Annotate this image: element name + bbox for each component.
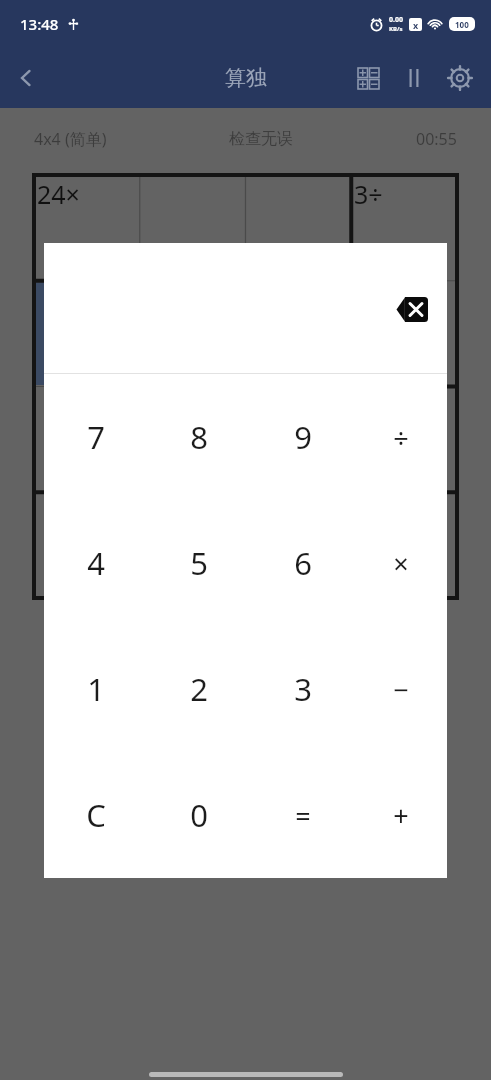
button[interactable]: +: [355, 752, 447, 878]
button[interactable]: 2: [147, 626, 251, 752]
button[interactable]: 8: [147, 374, 251, 500]
staticText: 9: [294, 416, 312, 458]
staticText: x: [413, 19, 419, 31]
staticText: 7: [87, 416, 105, 458]
staticText: +: [393, 797, 409, 834]
button[interactable]: Back: [0, 52, 52, 104]
staticText: 4x4 (简单): [34, 128, 107, 150]
staticText: 5: [190, 542, 208, 584]
staticText: 00:55: [416, 128, 457, 150]
staticText: 24×: [37, 177, 80, 211]
button[interactable]: 4: [44, 500, 147, 626]
staticText: −: [393, 671, 409, 708]
button[interactable]: 9: [251, 374, 355, 500]
button[interactable]: ×: [355, 500, 447, 626]
staticText: ×: [393, 545, 409, 582]
staticText: 6: [294, 542, 312, 584]
button[interactable]: 5: [147, 500, 251, 626]
staticText: 2: [190, 668, 208, 710]
button[interactable]: 3: [251, 626, 355, 752]
staticText: 1: [87, 668, 105, 710]
staticText: 3: [294, 668, 312, 710]
staticText: 100: [455, 19, 469, 30]
staticText: 算独: [225, 65, 267, 91]
button[interactable]: 0: [147, 752, 251, 878]
staticText: 4: [87, 542, 105, 584]
button[interactable]: Settings: [437, 55, 483, 101]
staticText: 13:48: [20, 14, 59, 34]
staticText: =: [295, 797, 311, 834]
button[interactable]: Backspace: [387, 288, 435, 330]
staticText: 8: [190, 416, 208, 458]
button[interactable]: =: [251, 752, 355, 878]
staticText: 0: [190, 794, 208, 836]
button[interactable]: Keypad: [345, 55, 391, 101]
button[interactable]: 1: [44, 626, 147, 752]
staticText: ÷: [393, 419, 409, 456]
button[interactable]: 6: [251, 500, 355, 626]
button[interactable]: Pause: [391, 55, 437, 101]
button[interactable]: C: [44, 752, 147, 878]
staticText: 3÷: [354, 177, 383, 211]
staticText: 0.00: [389, 15, 403, 25]
staticText: C: [86, 794, 106, 836]
button[interactable]: ÷: [355, 374, 447, 500]
button[interactable]: −: [355, 626, 447, 752]
staticText: KB/s: [389, 25, 403, 33]
staticText: 检查无误: [229, 129, 293, 149]
button[interactable]: 7: [44, 374, 147, 500]
